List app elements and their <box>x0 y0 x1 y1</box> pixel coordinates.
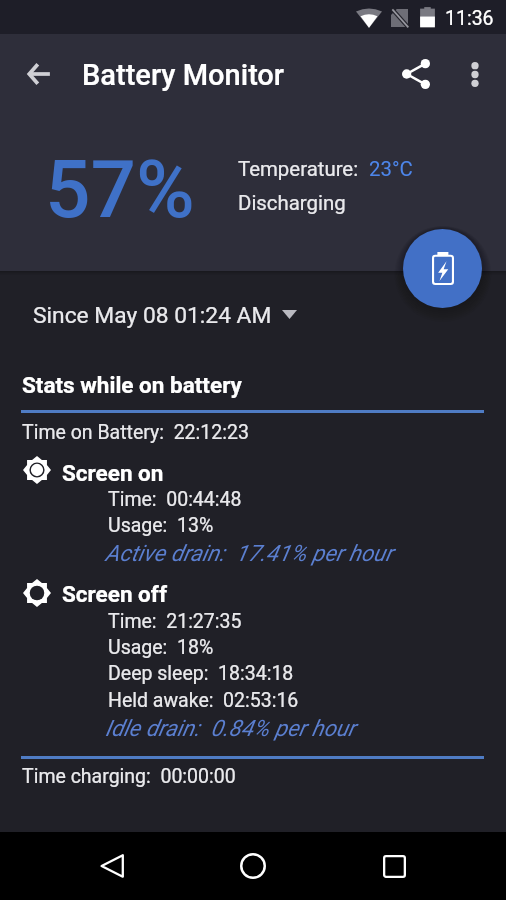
staticText: Time: 00:44:48 <box>108 488 242 511</box>
button[interactable]: Recent apps <box>370 842 418 890</box>
staticText: Time: 21:27:35 <box>108 610 242 633</box>
staticText: Since May 08 01:24 AM <box>33 302 272 329</box>
button[interactable]: Back <box>88 842 136 890</box>
staticText: Discharging <box>238 191 346 215</box>
staticText: Deep sleep: 18:34:18 <box>108 662 294 685</box>
staticText: Held awake: 02:53:16 <box>108 689 299 712</box>
staticText: Battery Monitor <box>82 58 285 92</box>
button[interactable]: Charging details <box>403 229 482 308</box>
staticText: 11:36 <box>445 7 494 30</box>
staticText: Stats while on battery <box>22 372 242 398</box>
staticText: Usage: 13% <box>108 514 214 537</box>
staticText: Idle drain: 0.84% per hour <box>105 715 356 741</box>
button[interactable]: Home <box>229 842 277 890</box>
button[interactable]: More options <box>451 50 499 98</box>
staticText: Screen off <box>62 581 167 607</box>
button[interactable]: Navigate up <box>15 50 63 98</box>
staticText: Screen on <box>62 460 164 486</box>
staticText: 57% <box>45 143 195 237</box>
staticText: Temperature: <box>238 157 364 181</box>
button[interactable]: Since May 08 01:24 AM <box>0 275 506 329</box>
button[interactable]: Share <box>392 50 440 98</box>
staticText: Time on Battery: 22:12:23 <box>22 421 249 444</box>
staticText: Active drain: 17.41% per hour <box>105 540 393 566</box>
staticText: 23°C <box>364 157 413 181</box>
staticText: Time charging: 00:00:00 <box>22 765 236 788</box>
staticText: Usage: 18% <box>108 636 214 659</box>
